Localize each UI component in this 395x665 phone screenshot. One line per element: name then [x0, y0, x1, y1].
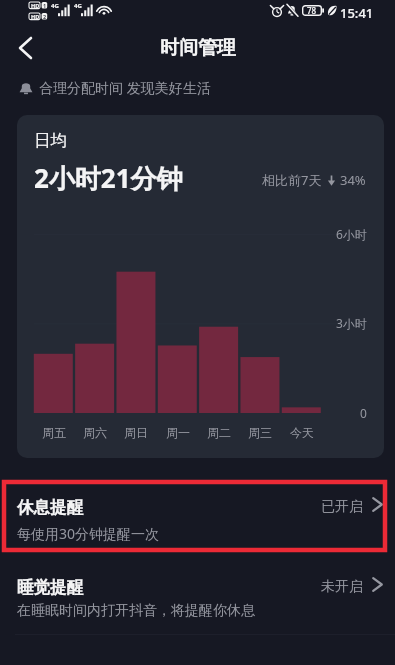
staticText: 78 [307, 5, 317, 16]
button[interactable]: 睡觉提醒 [0, 560, 395, 632]
staticText: 合理分配时间 发现美好生活 [39, 78, 211, 97]
staticText: 4G [74, 2, 82, 10]
staticText: 未开启 [321, 578, 363, 596]
staticText: 2 [43, 13, 47, 20]
staticText: 相比前7天 [262, 171, 322, 189]
staticText: 6小时 [336, 226, 367, 242]
staticText: 日均 [34, 130, 67, 151]
staticText: 每使用30分钟提醒一次 [17, 524, 160, 543]
button[interactable]: 休息提醒 [0, 480, 395, 552]
staticText: 周日 [124, 425, 148, 440]
staticText: 周三 [248, 425, 272, 440]
button[interactable]: Back [5, 28, 45, 68]
staticText: 15:41 [340, 4, 374, 22]
staticText: 4G [51, 2, 59, 10]
staticText: 已开启 [321, 498, 363, 516]
staticText: 在睡眠时间内打开抖音，将提醒你休息 [17, 602, 255, 620]
staticText: HD [31, 2, 40, 9]
staticText: 1 [43, 2, 47, 9]
staticText: 时间管理 [160, 36, 236, 60]
staticText: 2小时21分钟 [34, 160, 183, 196]
staticText: 周六 [83, 425, 107, 440]
staticText: 周二 [207, 425, 231, 440]
staticText: 34% [340, 171, 366, 189]
staticText: 3小时 [336, 315, 367, 331]
staticText: 今天 [290, 425, 314, 440]
staticText: 休息提醒 [17, 497, 83, 518]
staticText: 周一 [166, 425, 190, 440]
staticText: 周五 [42, 425, 66, 440]
staticText: HD [31, 13, 40, 20]
staticText: 0 [360, 405, 367, 421]
staticText: 睡觉提醒 [17, 577, 83, 598]
